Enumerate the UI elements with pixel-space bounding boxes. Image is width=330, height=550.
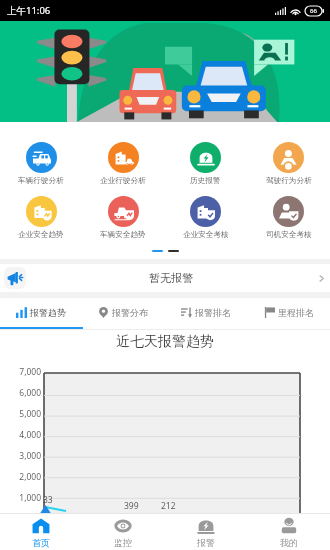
button[interactable]: 历史报警 bbox=[164, 142, 247, 186]
button[interactable]: 报警趋势 bbox=[0, 298, 82, 327]
staticText: 车辆行驶分析 bbox=[18, 176, 64, 186]
button[interactable]: 报警分布 bbox=[82, 298, 164, 327]
staticText: 上午11:06 bbox=[7, 4, 51, 17]
staticText: 33 bbox=[43, 494, 53, 506]
staticText: 5,000 bbox=[0, 408, 41, 420]
staticText: 车辆安全趋势 bbox=[100, 230, 146, 240]
staticText: 报警分布 bbox=[112, 307, 148, 318]
staticText: 企业行驶分析 bbox=[100, 176, 146, 186]
staticText: 企业安全考核 bbox=[183, 230, 229, 240]
button[interactable]: 报警 bbox=[164, 514, 247, 550]
button[interactable]: 暂无报警 bbox=[0, 264, 330, 292]
staticText: 里程排名 bbox=[278, 307, 314, 318]
staticText: 历史报警 bbox=[190, 176, 221, 186]
staticText: 报警趋势 bbox=[30, 307, 66, 318]
button[interactable]: 车辆安全趋势 bbox=[82, 196, 164, 240]
staticText: 1,000 bbox=[0, 492, 41, 504]
staticText: 监控 bbox=[114, 537, 132, 548]
button[interactable]: 首页 bbox=[0, 514, 82, 550]
staticText: 企业安全趋势 bbox=[18, 230, 64, 240]
staticText: 报警 bbox=[197, 537, 215, 548]
staticText: 近七天报警趋势 bbox=[0, 333, 330, 351]
staticText: 3,000 bbox=[0, 450, 41, 462]
button[interactable]: 企业行驶分析 bbox=[82, 142, 164, 186]
staticText: 首页 bbox=[32, 537, 50, 548]
staticText: 2,000 bbox=[0, 471, 41, 483]
button[interactable]: 里程排名 bbox=[247, 298, 330, 327]
staticText: 4,000 bbox=[0, 429, 41, 441]
staticText: 212 bbox=[161, 500, 176, 512]
staticText: 399 bbox=[124, 500, 139, 512]
button[interactable]: 司机安全考核 bbox=[247, 196, 330, 240]
staticText: 驾驶行为分析 bbox=[266, 176, 312, 186]
staticText: 7,000 bbox=[0, 366, 41, 378]
staticText: 6,000 bbox=[0, 387, 41, 399]
button[interactable]: 驾驶行为分析 bbox=[247, 142, 330, 186]
staticText: 司机安全考核 bbox=[266, 230, 312, 240]
button[interactable]: 报警排名 bbox=[164, 298, 247, 327]
button[interactable]: 企业安全考核 bbox=[164, 196, 247, 240]
staticText: 暂无报警 bbox=[149, 271, 193, 285]
staticText: 报警排名 bbox=[195, 307, 231, 318]
button[interactable]: 车辆行驶分析 bbox=[0, 142, 82, 186]
button[interactable]: 企业安全趋势 bbox=[0, 196, 82, 240]
staticText: 66 bbox=[310, 7, 317, 15]
button[interactable]: 监控 bbox=[82, 514, 164, 550]
button[interactable]: 我的 bbox=[247, 514, 330, 550]
staticText: 我的 bbox=[280, 537, 298, 548]
